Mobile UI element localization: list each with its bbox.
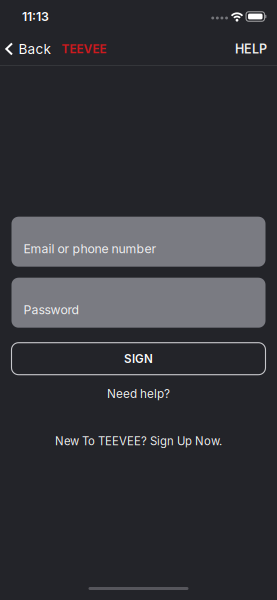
button[interactable]: SIGN [11, 343, 265, 375]
staticText: TEEVEE [61, 42, 106, 56]
staticText: New To TEEVEE? Sign Up Now. [55, 434, 222, 448]
button[interactable]: Email or phone number [11, 217, 265, 267]
staticText: 11:13 [22, 9, 49, 24]
staticText: SIGN [124, 352, 153, 366]
button[interactable]: Back [0, 41, 50, 57]
staticText: Email or phone number [23, 241, 156, 256]
button[interactable]: New To TEEVEE? Sign Up Now. [47, 432, 230, 450]
staticText: Back [18, 41, 50, 57]
button[interactable]: Password [11, 278, 265, 328]
staticText: HELP [235, 42, 267, 56]
button[interactable]: HELP [235, 42, 277, 56]
staticText: Need help? [107, 387, 170, 400]
button[interactable]: Need help? [99, 385, 178, 402]
staticText: Password [23, 302, 79, 317]
